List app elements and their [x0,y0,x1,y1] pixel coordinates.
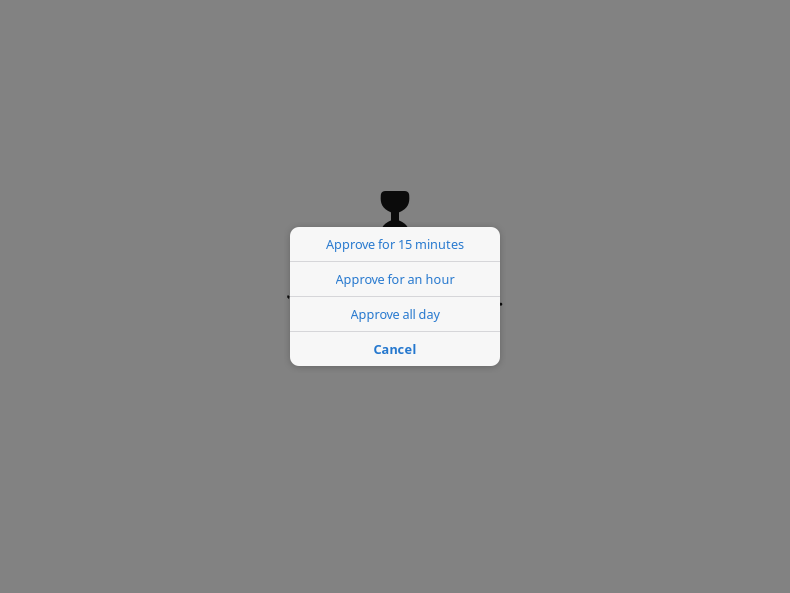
staticText: Approve all day [350,305,439,323]
button[interactable]: Approve all day [290,297,500,331]
staticText: Approve for an hour [335,270,454,288]
button[interactable]: Approve for 15 minutes [290,227,500,261]
button[interactable]: Cancel [290,332,500,366]
staticText: Approve for 15 minutes [326,235,464,253]
staticText: Cancel [373,340,416,358]
button[interactable]: Approve for an hour [290,262,500,296]
